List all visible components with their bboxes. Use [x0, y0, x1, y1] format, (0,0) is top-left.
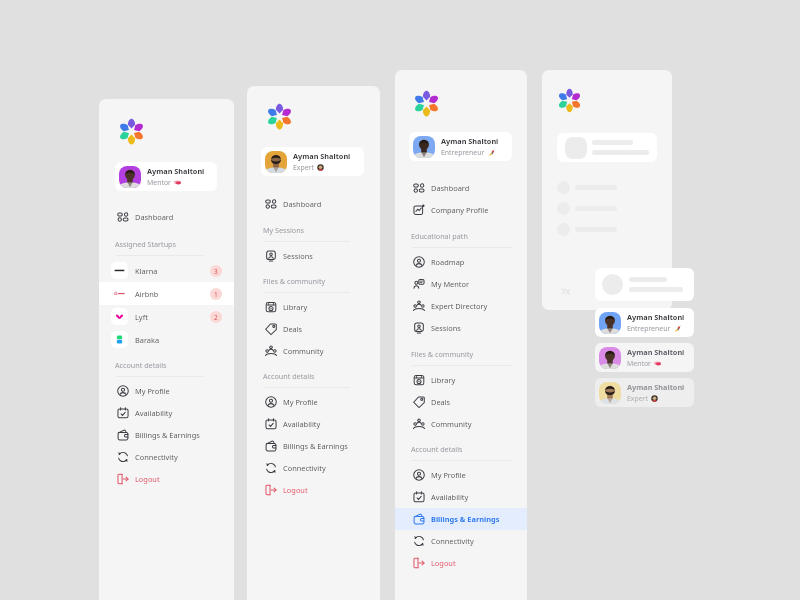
staticText: Logout	[135, 474, 160, 484]
button[interactable]: Ayman Shaltoni	[261, 147, 364, 176]
button[interactable]: Ayman Shaltoni	[115, 162, 217, 191]
staticText: Library	[283, 302, 308, 312]
button[interactable]: Ayman Shaltoni	[595, 378, 694, 407]
button[interactable]: Dashboard	[395, 177, 527, 199]
staticText: Community	[431, 419, 472, 429]
button[interactable]: Connectivity	[247, 457, 380, 479]
staticText: Ayman Shaltoni	[293, 151, 351, 161]
staticText: Assigned Startups	[115, 239, 176, 249]
button[interactable]: Logout	[247, 479, 380, 501]
button[interactable]: Library	[247, 296, 380, 318]
button[interactable]: Library	[395, 369, 527, 391]
button[interactable]: Roadmap	[395, 251, 527, 273]
button[interactable]: Ayman Shaltoni	[595, 308, 694, 337]
staticText: Expert	[293, 163, 314, 172]
staticText: Connectivity	[135, 452, 178, 462]
staticText: Community	[283, 346, 324, 356]
button[interactable]: My Profile	[247, 391, 380, 413]
staticText: 2	[214, 313, 218, 322]
staticText: My Mentor	[431, 279, 470, 289]
button[interactable]: Billings & Earnings	[99, 424, 234, 446]
staticText: Billings & Earnings	[431, 514, 500, 524]
button[interactable]: Dashboard	[247, 193, 380, 215]
staticText: Library	[431, 375, 456, 385]
button[interactable]: Ayman Shaltoni	[409, 132, 512, 161]
staticText: Connectivity	[283, 463, 326, 473]
staticText: Ayman Shaltoni	[627, 312, 685, 322]
staticText: Baraka	[135, 335, 160, 345]
staticText: My Sessions	[263, 225, 305, 235]
button[interactable]: Ayman Shaltoni	[595, 343, 694, 372]
staticText: Lyft	[135, 312, 148, 322]
staticText: Company Profile	[431, 205, 489, 215]
staticText: Entrepreneur	[441, 148, 485, 157]
staticText: Availability	[135, 408, 173, 418]
staticText: Ayman Shaltoni	[627, 382, 685, 392]
button[interactable]: Home	[267, 104, 292, 129]
staticText: Files & community	[411, 349, 474, 359]
button[interactable]: Lyft	[99, 305, 234, 328]
staticText: Deals	[283, 324, 303, 334]
button[interactable]: Logout	[99, 468, 234, 490]
button[interactable]: Home	[558, 89, 581, 112]
button[interactable]: Expert Directory	[395, 295, 527, 317]
button[interactable]: Airbnb	[99, 282, 234, 305]
staticText: Ayman Shaltoni	[627, 347, 685, 357]
staticText: Availability	[431, 492, 469, 502]
button[interactable]: Billings & Earnings	[395, 508, 527, 530]
button[interactable]: Sessions	[395, 317, 527, 339]
staticText: Sessions	[283, 251, 313, 261]
staticText: Entrepreneur	[627, 324, 671, 333]
button[interactable]: Connectivity	[395, 530, 527, 552]
staticText: Account details	[411, 444, 463, 454]
staticText: Logout	[431, 558, 456, 568]
staticText: Expert Directory	[431, 301, 488, 311]
staticText: Billings & Earnings	[283, 441, 348, 451]
button[interactable]: My Mentor	[395, 273, 527, 295]
button[interactable]: Deals	[247, 318, 380, 340]
button[interactable]: Company Profile	[395, 199, 527, 221]
button[interactable]: Connectivity	[99, 446, 234, 468]
button[interactable]: Availability	[395, 486, 527, 508]
staticText: 3	[214, 267, 218, 276]
staticText: Ayman Shaltoni	[147, 166, 205, 176]
button[interactable]: Dashboard	[99, 206, 234, 228]
staticText: My Profile	[431, 470, 466, 480]
button[interactable]: Home	[414, 91, 439, 116]
staticText: Educational path	[411, 231, 468, 241]
button[interactable]: My Profile	[99, 380, 234, 402]
button[interactable]: My Profile	[395, 464, 527, 486]
staticText: Sessions	[431, 323, 461, 333]
button[interactable]: Baraka	[99, 328, 234, 351]
staticText: My Profile	[135, 386, 170, 396]
button[interactable]: Billings & Earnings	[247, 435, 380, 457]
staticText: Billings & Earnings	[135, 430, 200, 440]
staticText: My Profile	[283, 397, 318, 407]
button[interactable]: Home	[119, 119, 144, 144]
button[interactable]: Community	[247, 340, 380, 362]
staticText: Dashboard	[135, 212, 174, 222]
staticText: Dashboard	[431, 183, 470, 193]
staticText: Ayman Shaltoni	[441, 136, 499, 146]
staticText: 1	[214, 290, 218, 299]
button[interactable]: Klarna	[99, 259, 234, 282]
button[interactable]: Availability	[247, 413, 380, 435]
staticText: Expert	[627, 394, 648, 403]
staticText: Logout	[283, 485, 308, 495]
staticText: Deals	[431, 397, 451, 407]
button[interactable]: Community	[395, 413, 527, 435]
button[interactable]: Logout	[395, 552, 527, 574]
staticText: Mentor	[147, 178, 171, 187]
button[interactable]: Availability	[99, 402, 234, 424]
staticText: Files & community	[263, 276, 326, 286]
button[interactable]: Deals	[395, 391, 527, 413]
button[interactable]: Sessions	[247, 245, 380, 267]
staticText: Airbnb	[135, 289, 159, 299]
staticText: Account details	[263, 371, 315, 381]
staticText: Roadmap	[431, 257, 465, 267]
staticText: Mentor	[627, 359, 651, 368]
staticText: Klarna	[135, 266, 158, 276]
staticText: Dashboard	[283, 199, 322, 209]
staticText: Availability	[283, 419, 321, 429]
staticText: Connectivity	[431, 536, 474, 546]
